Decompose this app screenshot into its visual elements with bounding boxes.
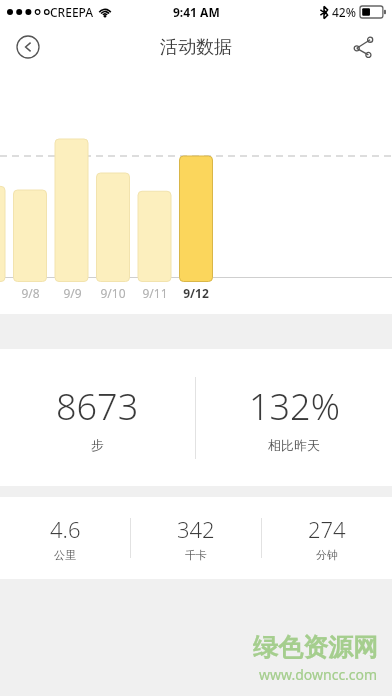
- staticText: 步: [91, 437, 104, 453]
- staticText: 9:41 AM: [173, 4, 220, 20]
- button[interactable]: Share: [344, 27, 384, 67]
- staticText: 9/8: [21, 285, 40, 301]
- staticText: CREEPA: [50, 4, 94, 20]
- staticText: 9/9: [63, 285, 82, 301]
- staticText: 9/10: [100, 285, 126, 301]
- staticText: 42%: [332, 4, 356, 20]
- staticText: 活动数据: [160, 36, 232, 59]
- staticText: 绿色资源网: [253, 632, 378, 663]
- staticText: 8673: [56, 382, 139, 431]
- staticText: 4.6: [50, 514, 81, 544]
- staticText: 132%: [249, 382, 340, 431]
- staticText: 274: [308, 514, 346, 544]
- button[interactable]: 4.6: [0, 497, 392, 579]
- staticText: 相比昨天: [268, 437, 320, 453]
- staticText: 9/11: [142, 285, 168, 301]
- staticText: 分钟: [316, 548, 338, 562]
- staticText: 9/12: [183, 285, 209, 301]
- staticText: www.downcc.com: [259, 665, 378, 684]
- staticText: 千卡: [185, 548, 207, 562]
- button[interactable]: Back: [8, 27, 48, 67]
- staticText: 342: [177, 514, 215, 544]
- button[interactable]: 8673: [0, 349, 392, 486]
- staticText: 公里: [54, 548, 76, 562]
